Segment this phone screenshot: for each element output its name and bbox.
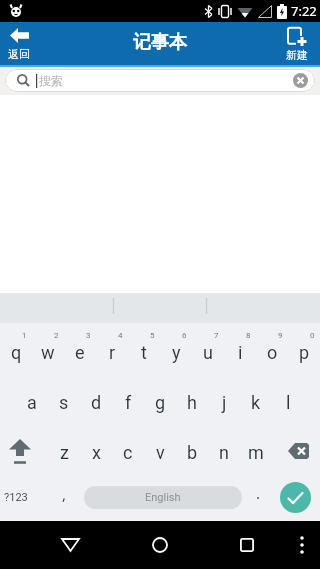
button[interactable]: v (144, 423, 176, 473)
staticText: f (125, 392, 132, 413)
staticText: b (187, 442, 198, 463)
button[interactable]: k (240, 373, 272, 423)
button[interactable] (223, 521, 271, 569)
button[interactable]: h (176, 373, 208, 423)
staticText: 8 (246, 331, 251, 340)
button[interactable]: x (80, 423, 112, 473)
staticText: 6 (182, 331, 187, 340)
staticText: p (299, 342, 310, 363)
staticText: h (187, 392, 197, 413)
button[interactable]: 1 (0, 323, 32, 373)
button[interactable]: 0 (288, 323, 320, 373)
button[interactable]: l (272, 373, 304, 423)
button[interactable]: 3 (64, 323, 96, 373)
staticText: q (11, 342, 22, 363)
button[interactable]: 5 (128, 323, 160, 373)
staticText: e (75, 342, 85, 363)
button[interactable]: ?123 (0, 473, 44, 521)
button[interactable]: z (48, 423, 80, 473)
button[interactable]: 4 (96, 323, 128, 373)
staticText: u (203, 342, 213, 363)
button[interactable]: . (242, 473, 274, 521)
staticText: 9 (278, 331, 283, 340)
staticText: l (286, 392, 291, 413)
staticText: , (62, 484, 67, 504)
staticText: r (109, 342, 116, 363)
staticText: 搜索 (39, 73, 63, 88)
staticText: 7 (214, 331, 219, 340)
staticText: a (27, 392, 37, 413)
staticText: y (172, 342, 181, 363)
staticText: 返回 (8, 47, 30, 61)
button[interactable]: j (208, 373, 240, 423)
button[interactable] (0, 423, 48, 473)
button[interactable]: , (44, 473, 84, 521)
staticText: 记事本 (133, 31, 187, 54)
staticText: . (256, 483, 261, 503)
button[interactable]: 8 (224, 323, 256, 373)
staticText: n (219, 442, 229, 463)
button[interactable] (274, 473, 316, 521)
button[interactable]: 返回 (0, 22, 38, 67)
staticText: ?123 (4, 491, 28, 504)
button[interactable] (46, 521, 94, 569)
button[interactable] (293, 73, 308, 88)
button[interactable]: g (144, 373, 176, 423)
staticText: k (251, 392, 261, 413)
button[interactable]: English (84, 486, 242, 509)
button[interactable]: 6 (160, 323, 192, 373)
button[interactable]: n (208, 423, 240, 473)
staticText: 4 (118, 331, 123, 340)
staticText: c (123, 442, 133, 463)
staticText: d (91, 392, 102, 413)
staticText: s (59, 392, 69, 413)
staticText: 新建 (286, 48, 308, 62)
button[interactable]: f (112, 373, 144, 423)
button[interactable]: 搜索 (5, 69, 315, 92)
staticText: v (156, 442, 165, 463)
button[interactable]: 7 (192, 323, 224, 373)
button[interactable] (286, 521, 318, 569)
staticText: w (41, 342, 55, 363)
staticText: 7:22 (291, 2, 317, 20)
staticText: 0 (310, 331, 315, 340)
staticText: o (267, 342, 278, 363)
staticText: j (222, 392, 227, 413)
button[interactable]: c (112, 423, 144, 473)
button[interactable]: b (176, 423, 208, 473)
button[interactable]: m (240, 423, 272, 473)
staticText: t (141, 342, 147, 363)
staticText: i (238, 342, 243, 363)
button[interactable]: a (16, 373, 48, 423)
button[interactable]: s (48, 373, 80, 423)
staticText: 3 (86, 331, 91, 340)
button[interactable]: 新建 (274, 22, 320, 67)
staticText: 2 (54, 331, 59, 340)
staticText: z (60, 442, 69, 463)
staticText: x (92, 442, 101, 463)
button[interactable]: 9 (256, 323, 288, 373)
staticText: m (248, 442, 264, 463)
staticText: English (145, 491, 181, 504)
button[interactable]: d (80, 373, 112, 423)
button[interactable] (272, 423, 320, 473)
staticText: g (155, 392, 166, 413)
staticText: 1 (22, 331, 27, 340)
button[interactable]: 2 (32, 323, 64, 373)
button[interactable] (136, 521, 184, 569)
staticText: 5 (150, 331, 155, 340)
